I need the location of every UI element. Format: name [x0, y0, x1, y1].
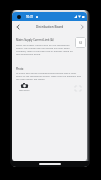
staticText: 63	[79, 41, 83, 45]
staticText: 10:31	[26, 15, 34, 19]
staticText: Take photo	[19, 89, 30, 92]
button[interactable]: Choose from gallery	[74, 84, 82, 92]
staticText: Photo	[16, 67, 24, 71]
button[interactable]: Back	[13, 22, 22, 31]
button[interactable]: Take photo	[16, 83, 32, 92]
staticText: Mains Supply Current Limit (A)	[16, 38, 54, 42]
staticText: Distribution Board	[36, 25, 64, 29]
staticText: Select the supply current limit for this…	[16, 44, 75, 56]
staticText: To assist with future troubleshooting pl…	[16, 72, 83, 81]
button[interactable]: 63	[75, 37, 86, 48]
button[interactable]: More	[77, 22, 86, 31]
